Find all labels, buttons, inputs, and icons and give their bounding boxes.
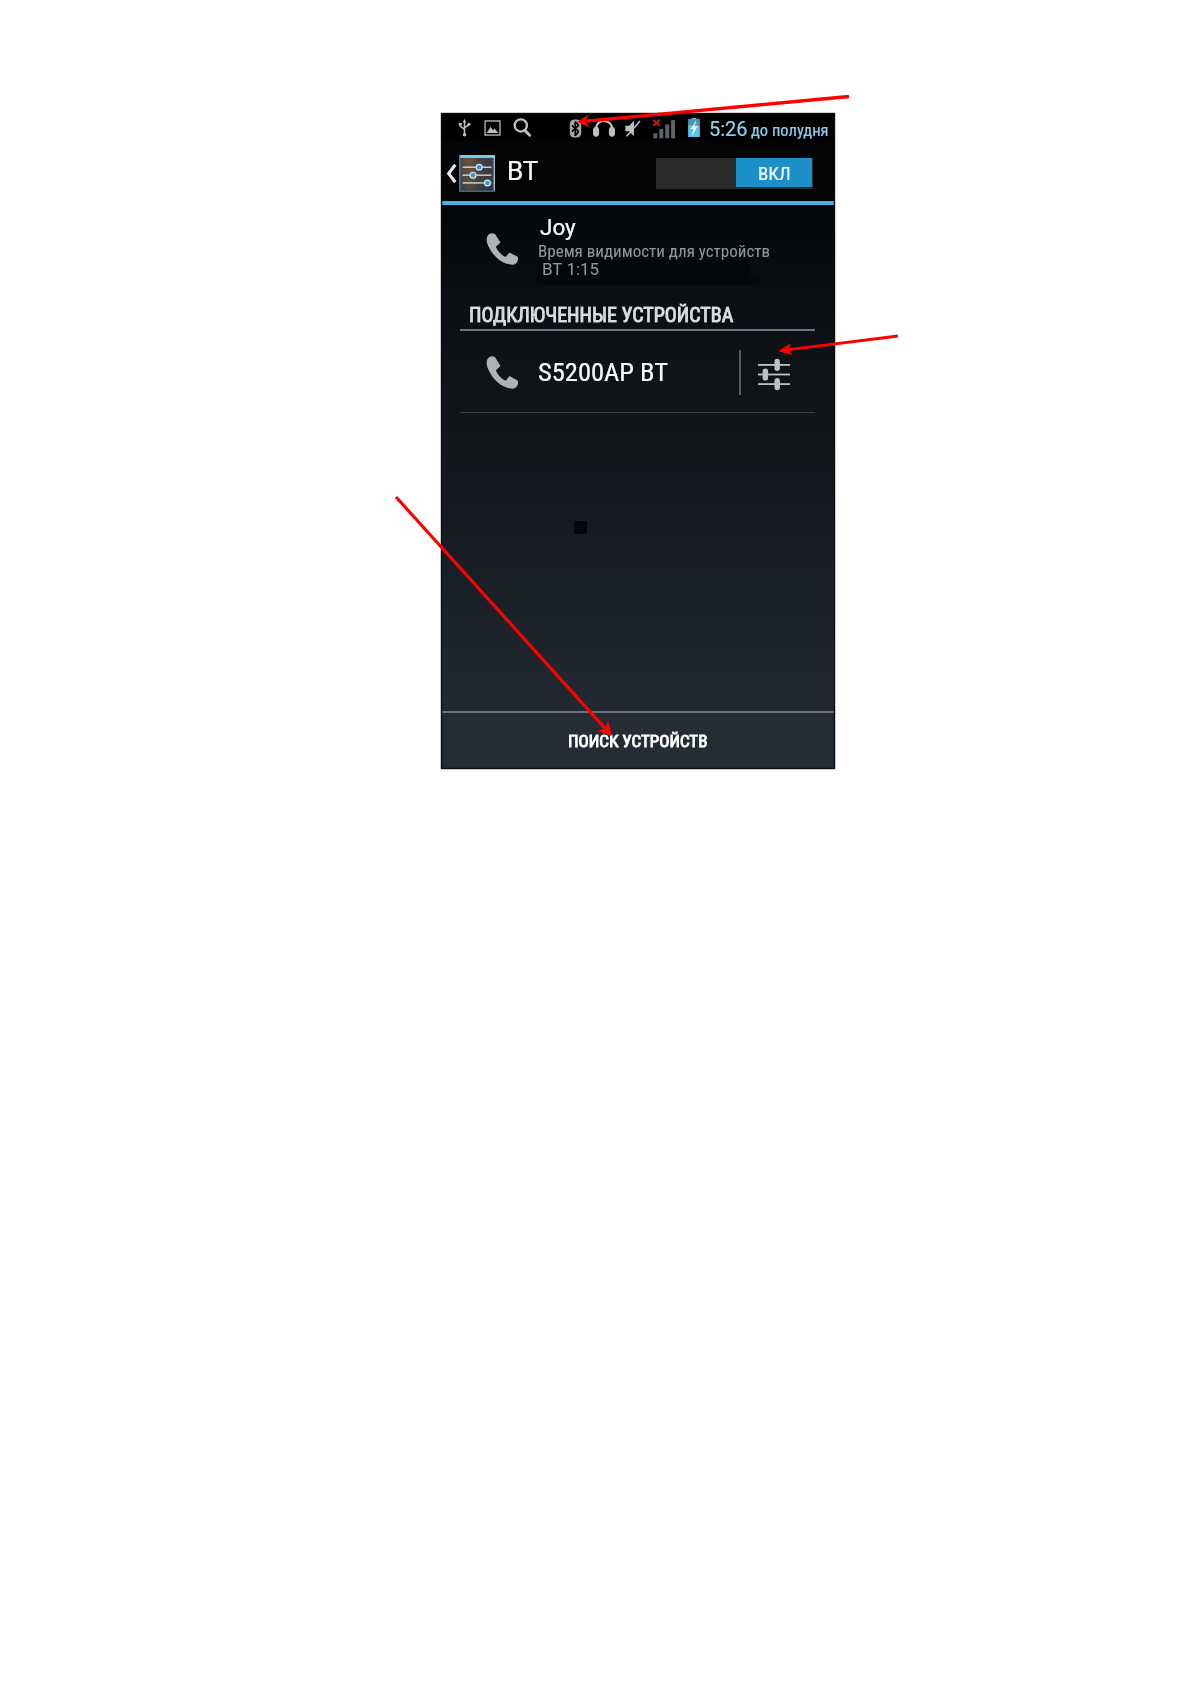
- staticText: BT: [507, 156, 539, 186]
- staticText: ВКЛ: [758, 162, 791, 184]
- button[interactable]: [441, 331, 835, 414]
- button[interactable]: Joy: [441, 205, 835, 299]
- button[interactable]: Device settings: [744, 339, 835, 405]
- staticText: S5200AP BT: [538, 356, 669, 387]
- staticText: Joy: [540, 214, 576, 240]
- staticText: до полудня: [751, 121, 829, 140]
- staticText: ПОИСК УСТРОЙСТВ: [568, 731, 708, 751]
- button[interactable]: Back: [441, 141, 499, 201]
- button[interactable]: ПОИСК УСТРОЙСТВ: [441, 713, 835, 769]
- staticText: Время видимости для устройств: [538, 241, 771, 261]
- staticText: BT 1:15: [542, 259, 600, 279]
- button[interactable]: ВКЛ: [656, 158, 813, 189]
- staticText: ПОДКЛЮЧЕННЫЕ УСТРОЙСТВА: [469, 303, 734, 326]
- staticText: 5:26: [709, 117, 748, 140]
